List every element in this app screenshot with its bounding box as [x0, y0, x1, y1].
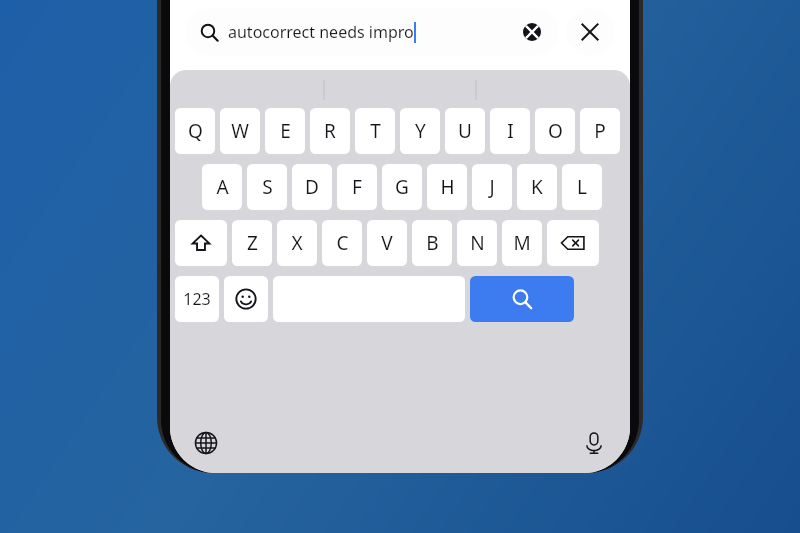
button[interactable]: U [445, 108, 485, 154]
staticText: R [324, 118, 336, 144]
staticText: D [305, 174, 319, 200]
button[interactable]: Emoji [224, 276, 268, 322]
staticText: A [216, 174, 229, 200]
button[interactable]: P [580, 108, 620, 154]
staticText: Q [188, 118, 203, 144]
staticText: S [262, 174, 273, 200]
button[interactable]: C [322, 220, 362, 266]
button[interactable]: 123 [175, 276, 219, 322]
staticText: P [594, 118, 606, 144]
staticText: W [231, 118, 249, 144]
staticText: T [370, 118, 381, 144]
button[interactable]: T [355, 108, 395, 154]
button[interactable]: Shift [175, 220, 227, 266]
button[interactable]: Close search [566, 8, 614, 56]
staticText: Z [247, 230, 258, 256]
staticText: V [381, 230, 393, 256]
button[interactable]: autocorrect needs impro [186, 8, 558, 56]
staticText: M [513, 230, 531, 256]
staticText: L [577, 174, 587, 200]
button[interactable]: G [382, 164, 422, 210]
staticText: E [280, 118, 291, 144]
button[interactable]: H [427, 164, 467, 210]
staticText: C [336, 230, 349, 256]
staticText: N [470, 230, 485, 256]
button[interactable]: A [202, 164, 242, 210]
button[interactable]: Backspace [547, 220, 599, 266]
button[interactable]: D [292, 164, 332, 210]
button[interactable]: Change keyboard language [189, 426, 223, 460]
staticText: autocorrect needs impro [228, 21, 414, 43]
button[interactable]: R [310, 108, 350, 154]
button[interactable]: B [412, 220, 452, 266]
button[interactable]: X [277, 220, 317, 266]
button[interactable]: S [247, 164, 287, 210]
button[interactable]: Y [400, 108, 440, 154]
button[interactable]: W [220, 108, 260, 154]
button[interactable]: Z [232, 220, 272, 266]
staticText: Y [415, 118, 426, 144]
staticText: J [489, 174, 495, 200]
button[interactable]: L [562, 164, 602, 210]
button[interactable]: J [472, 164, 512, 210]
staticText: O [548, 118, 563, 144]
staticText: U [458, 118, 472, 144]
staticText: F [352, 174, 362, 200]
staticText: K [531, 174, 543, 200]
button[interactable]: N [457, 220, 497, 266]
button[interactable]: Voice input [577, 426, 611, 460]
button[interactable]: Search [470, 276, 574, 322]
button[interactable]: F [337, 164, 377, 210]
button[interactable]: M [502, 220, 542, 266]
staticText: H [440, 174, 455, 200]
staticText: I [507, 118, 514, 144]
button[interactable]: Clear text [520, 20, 544, 44]
button[interactable]: E [265, 108, 305, 154]
staticText: B [426, 230, 439, 256]
button[interactable]: O [535, 108, 575, 154]
staticText: X [291, 230, 303, 256]
button[interactable]: I [490, 108, 530, 154]
staticText: G [395, 174, 409, 200]
button[interactable]: V [367, 220, 407, 266]
button[interactable]: K [517, 164, 557, 210]
button[interactable]: Q [175, 108, 215, 154]
staticText: 123 [183, 288, 211, 310]
